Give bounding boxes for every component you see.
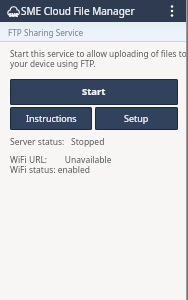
staticText: Start this service to allow uploading of… bbox=[10, 48, 186, 70]
button[interactable]: More options bbox=[164, 0, 180, 22]
button[interactable]: Instructions bbox=[10, 107, 92, 130]
button[interactable]: Start bbox=[10, 79, 178, 105]
staticText: Instructions bbox=[26, 112, 77, 124]
staticText: SME Cloud File Manager bbox=[21, 4, 135, 18]
staticText: Setup bbox=[124, 112, 149, 124]
button[interactable]: Setup bbox=[95, 107, 178, 130]
staticText: Server status: Stopped bbox=[10, 136, 105, 148]
staticText: Start bbox=[82, 85, 106, 98]
staticText: WiFi URL: Unavailable WiFi status: enabl… bbox=[10, 154, 112, 175]
staticText: SME bbox=[9, 12, 19, 18]
staticText: FTP Sharing Service bbox=[8, 27, 84, 38]
